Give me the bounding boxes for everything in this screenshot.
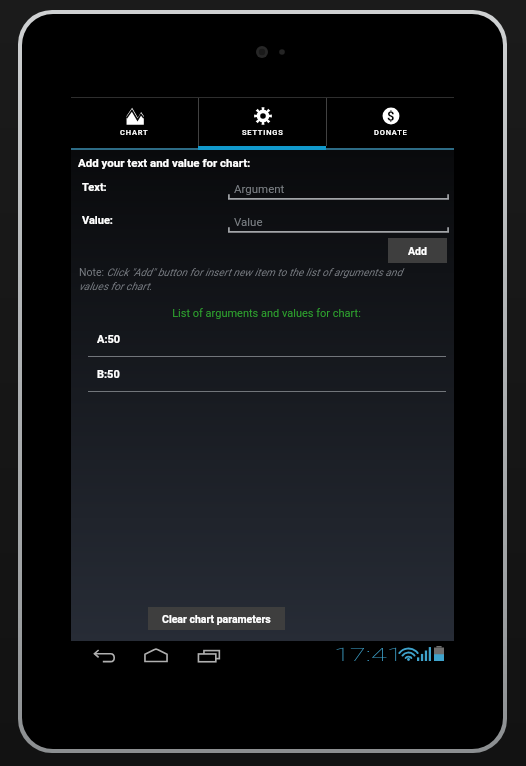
button[interactable]: Clear chart parameters: [148, 607, 285, 630]
staticText: DONATE: [374, 128, 408, 137]
staticText: Add: [408, 245, 427, 257]
button[interactable]: $: [327, 98, 454, 146]
staticText: Clear chart parameters: [162, 613, 271, 625]
button[interactable]: B:50: [71, 363, 454, 398]
staticText: List of arguments and values for chart:: [75, 307, 458, 320]
staticText: Value: [234, 215, 263, 228]
staticText: 17:41: [334, 644, 403, 665]
button[interactable]: CHART: [71, 98, 198, 146]
staticText: Note: Click "Add" button for insert new …: [79, 266, 431, 292]
button[interactable]: A:50: [71, 328, 454, 363]
button[interactable]: Home: [138, 642, 174, 668]
staticText: A:50: [97, 333, 121, 346]
staticText: $: [387, 109, 395, 124]
staticText: Value:: [82, 214, 113, 227]
button[interactable]: Add: [388, 238, 447, 263]
button[interactable]: Recents: [191, 643, 227, 669]
button[interactable]: SETTINGS: [199, 98, 326, 146]
staticText: Text:: [82, 181, 107, 194]
staticText: CHART: [120, 128, 149, 137]
staticText: SETTINGS: [242, 128, 284, 137]
staticText: Argument: [234, 182, 285, 195]
staticText: Add your text and value for chart:: [78, 156, 251, 169]
staticText: B:50: [97, 368, 120, 381]
button[interactable]: Back: [86, 643, 122, 669]
